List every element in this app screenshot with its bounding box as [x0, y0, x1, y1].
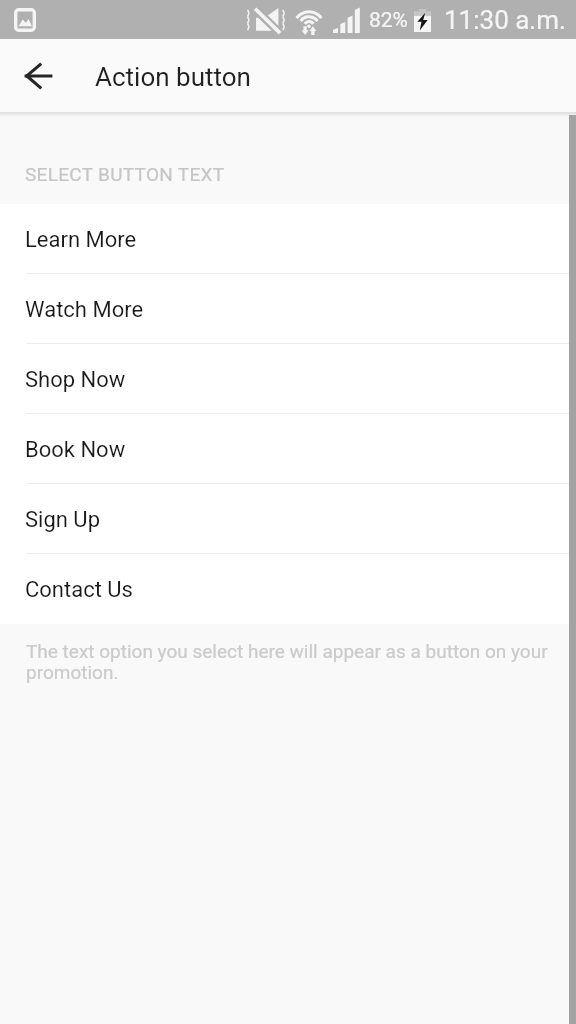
staticText: Watch More: [25, 297, 144, 323]
staticText: 82%: [369, 8, 408, 33]
button[interactable]: Learn More: [0, 204, 576, 274]
button[interactable]: Watch More: [0, 274, 576, 344]
staticText: SELECT BUTTON TEXT: [25, 163, 225, 185]
staticText: Sign Up: [25, 507, 100, 533]
staticText: Book Now: [25, 437, 126, 463]
staticText: The text option you select here will app…: [26, 640, 548, 684]
button[interactable]: Back: [14, 52, 62, 100]
staticText: 11:30 a.m.: [444, 5, 566, 35]
staticText: Learn More: [25, 227, 137, 253]
staticText: Contact Us: [25, 577, 133, 603]
button[interactable]: Contact Us: [0, 554, 576, 624]
staticText: Action button: [95, 62, 251, 92]
staticText: Shop Now: [25, 367, 126, 393]
button[interactable]: Shop Now: [0, 344, 576, 414]
button[interactable]: Sign Up: [0, 484, 576, 554]
button[interactable]: Book Now: [0, 414, 576, 484]
